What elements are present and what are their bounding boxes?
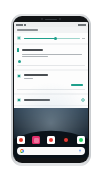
button[interactable]: Photos [62,136,70,144]
button[interactable]: More options [14,106,88,108]
button[interactable]: Voice search [17,147,85,155]
button[interactable] [14,71,88,93]
button[interactable]: Settings [14,95,88,105]
button[interactable]: Voice search [78,149,82,153]
button[interactable]: Instagram [32,136,40,144]
button[interactable] [14,45,88,69]
button[interactable] [14,33,88,43]
button[interactable]: YouTube [17,136,25,144]
button[interactable] [69,82,85,88]
button[interactable]: WhatsApp [77,136,85,144]
button[interactable]: Settings [81,98,85,102]
button[interactable]: Camera [47,136,55,144]
